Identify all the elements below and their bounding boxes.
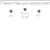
staticText: Files bbox=[36, 14, 42, 17]
button[interactable]: Photo Library bbox=[18, 8, 32, 19]
button[interactable]: Files bbox=[32, 10, 46, 17]
button[interactable]: Scan bbox=[4, 10, 18, 17]
staticText: Scan bbox=[8, 14, 13, 17]
staticText: Choose how you want to start bbox=[0, 0, 50, 6]
staticText: Photo Library bbox=[20, 12, 29, 19]
